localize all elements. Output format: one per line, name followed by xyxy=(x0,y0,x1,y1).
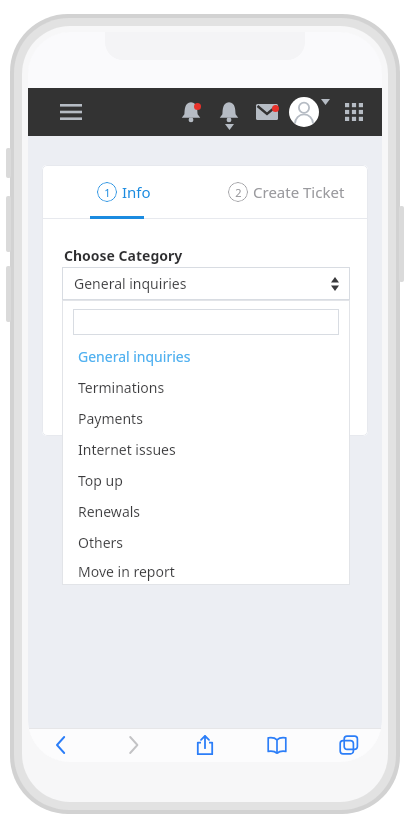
staticText: Info xyxy=(122,182,151,202)
staticText: General inquiries xyxy=(74,274,187,293)
staticText: Internet issues xyxy=(78,440,176,459)
button[interactable]: Top up xyxy=(62,465,350,496)
button[interactable]: Notifications xyxy=(212,95,246,129)
button[interactable]: 1 xyxy=(42,165,205,218)
button[interactable]: Alerts xyxy=(174,95,208,129)
button[interactable]: Tabs xyxy=(332,728,366,762)
button[interactable]: Internet issues xyxy=(62,434,350,465)
staticText: Payments xyxy=(78,409,143,428)
button[interactable]: Terminations xyxy=(62,372,350,403)
button[interactable]: Apps xyxy=(338,96,370,128)
staticText: 1 xyxy=(104,185,111,200)
staticText: General inquiries xyxy=(78,347,191,366)
button[interactable]: Move in report xyxy=(62,558,350,585)
staticText: 2 xyxy=(235,185,242,200)
button[interactable]: General inquiries xyxy=(62,341,350,372)
button[interactable]: Bookmarks xyxy=(260,728,294,762)
button[interactable]: Forward xyxy=(116,728,150,762)
staticText: Terminations xyxy=(78,378,165,397)
button[interactable]: General inquiries xyxy=(62,267,350,300)
button[interactable]: Messages xyxy=(250,95,284,129)
button[interactable]: Others xyxy=(62,527,350,558)
button[interactable]: Renewals xyxy=(62,496,350,527)
button[interactable]: Payments xyxy=(62,403,350,434)
button[interactable]: Menu xyxy=(48,88,94,136)
button[interactable]: 2 xyxy=(205,165,368,218)
staticText: Choose Category xyxy=(64,246,183,265)
staticText: Create Ticket xyxy=(253,182,345,202)
button[interactable]: Back xyxy=(44,728,78,762)
staticText: Renewals xyxy=(78,502,141,521)
button[interactable]: Share xyxy=(188,728,222,762)
staticText: Move in report xyxy=(78,562,175,581)
staticText: Others xyxy=(78,533,124,552)
button[interactable] xyxy=(73,309,339,335)
staticText: Top up xyxy=(78,471,123,490)
button[interactable]: Account xyxy=(287,95,321,129)
